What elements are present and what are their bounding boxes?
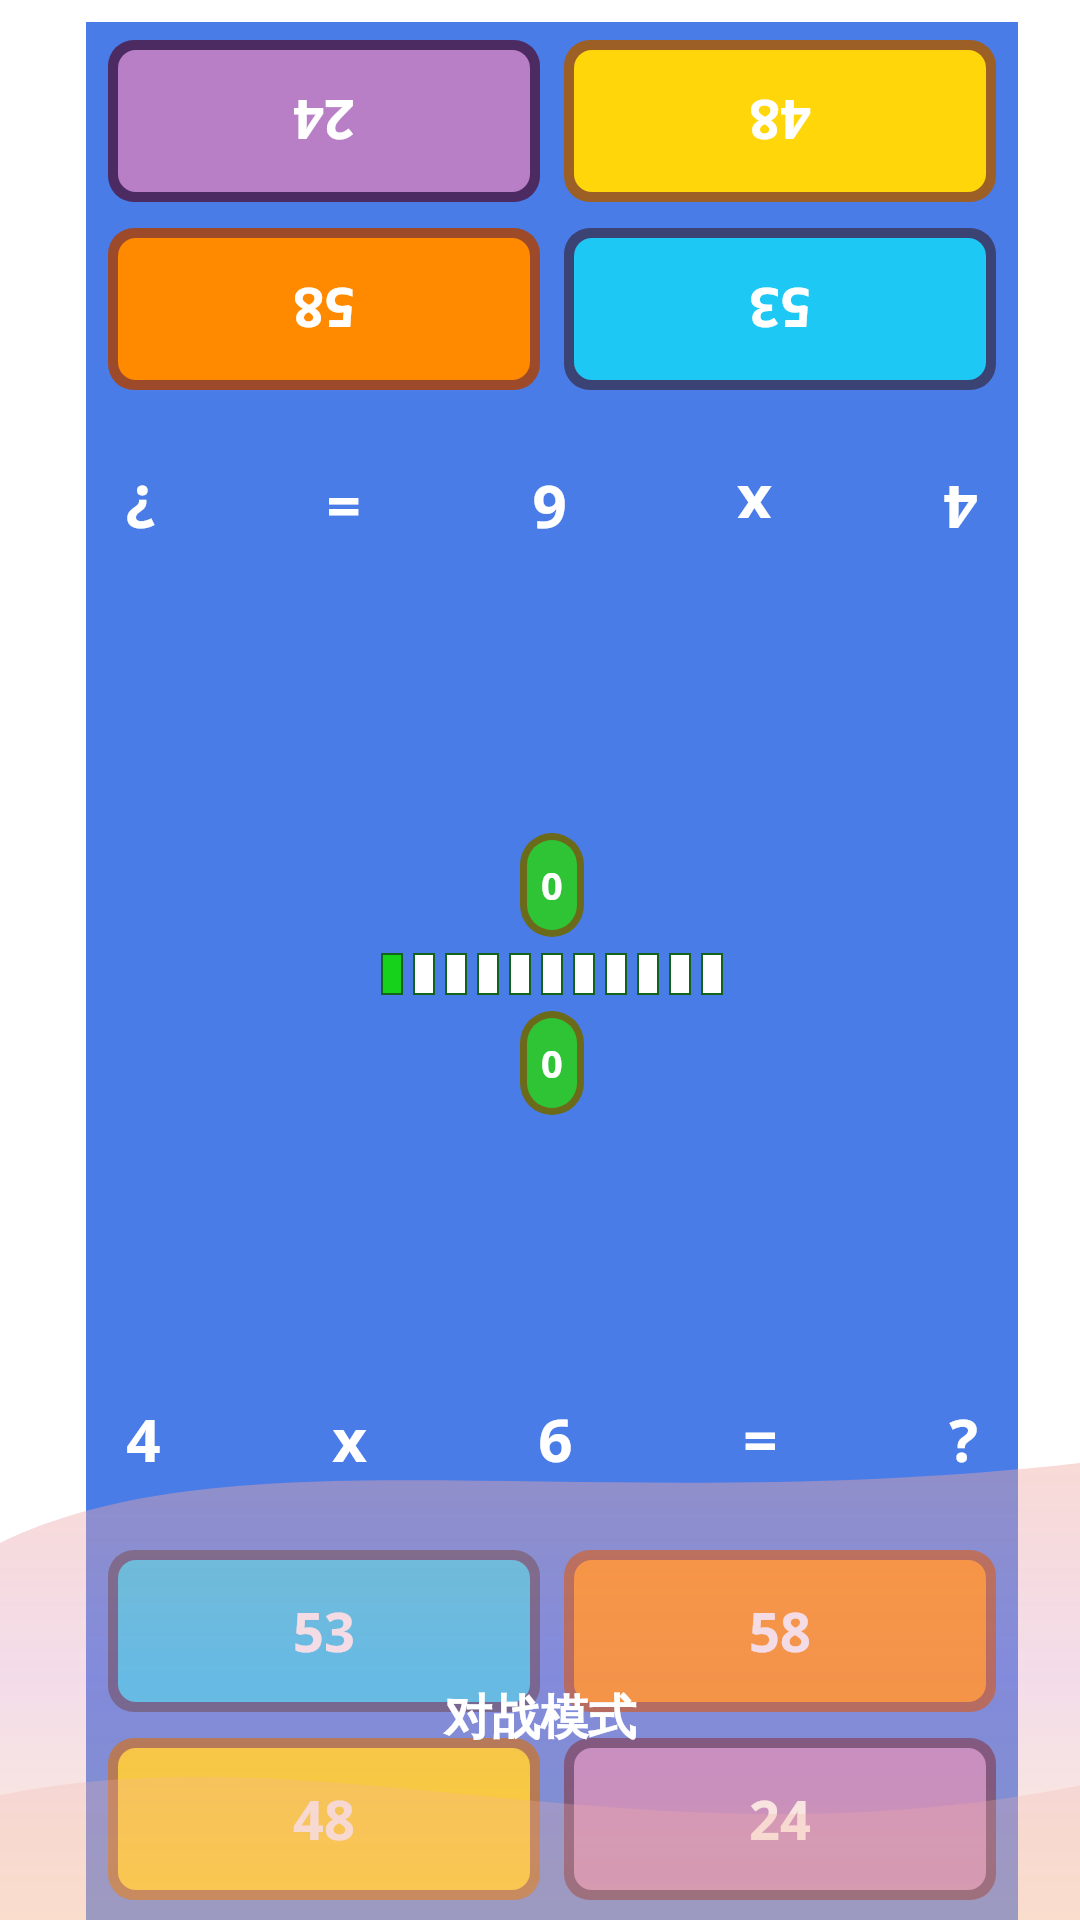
staticText: x: [332, 1398, 367, 1480]
staticText: 58: [293, 272, 355, 346]
staticText: 4: [943, 468, 978, 550]
button[interactable]: 24: [564, 1738, 996, 1900]
button[interactable]: 53: [564, 228, 996, 390]
staticText: ?: [949, 1398, 978, 1480]
button[interactable]: 24: [108, 40, 540, 202]
staticText: 6: [538, 1398, 573, 1480]
staticText: 48: [293, 1782, 355, 1856]
staticText: 对战模式: [444, 1688, 636, 1748]
staticText: 6: [532, 468, 567, 550]
button[interactable]: 58: [108, 228, 540, 390]
staticText: ?: [126, 468, 155, 550]
staticText: 0: [541, 859, 563, 911]
staticText: 24: [293, 84, 355, 158]
button[interactable]: 53: [108, 1550, 540, 1712]
staticText: 4: [126, 1398, 161, 1480]
staticText: x: [737, 468, 772, 550]
staticText: =: [326, 468, 361, 550]
button[interactable]: 48: [564, 40, 996, 202]
button[interactable]: 58: [564, 1550, 996, 1712]
staticText: 0: [541, 1037, 563, 1089]
staticText: 48: [749, 84, 811, 158]
staticText: 58: [749, 1594, 811, 1668]
staticText: 53: [749, 272, 811, 346]
button[interactable]: 48: [108, 1738, 540, 1900]
staticText: 24: [749, 1782, 811, 1856]
staticText: =: [743, 1398, 778, 1480]
staticText: 53: [293, 1594, 355, 1668]
